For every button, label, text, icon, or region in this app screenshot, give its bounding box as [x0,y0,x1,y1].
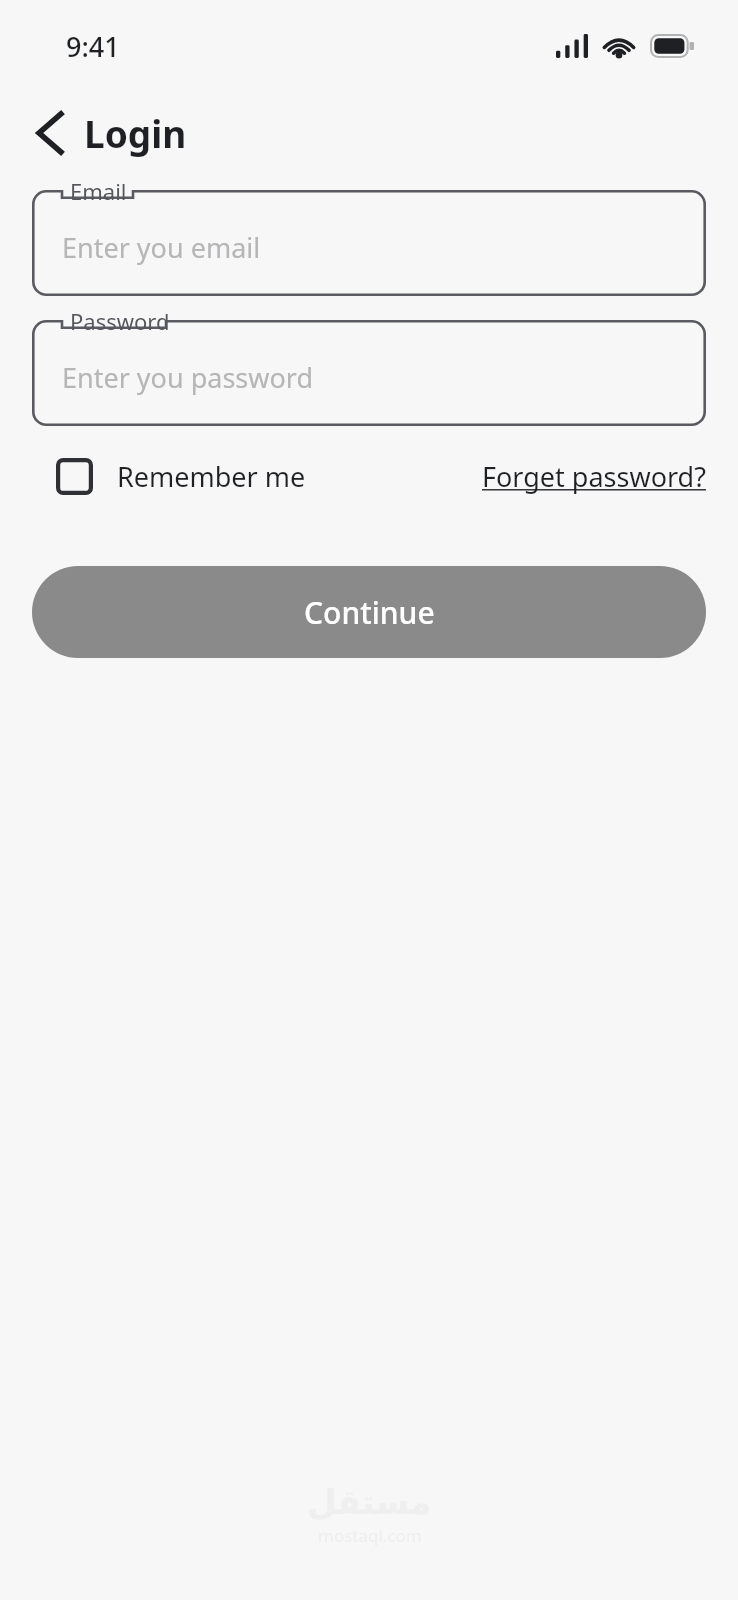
staticText: Forget password? [482,458,706,495]
staticText: Enter you password [62,359,314,396]
staticText: Email [70,176,127,206]
button[interactable]: Back [26,109,74,157]
button[interactable]: Password [32,320,706,426]
staticText: Continue [304,592,435,633]
button[interactable]: Remember me [32,458,312,495]
button[interactable]: Email [32,190,706,296]
staticText: Login [84,108,187,158]
staticText: Password [70,306,170,336]
button[interactable]: Continue [32,566,706,658]
staticText: مستقل [307,1482,432,1522]
staticText: Enter you email [62,229,261,266]
staticText: 9:41 [66,28,120,65]
staticText: Remember me [117,458,306,495]
button[interactable]: Forget password? [482,458,706,495]
